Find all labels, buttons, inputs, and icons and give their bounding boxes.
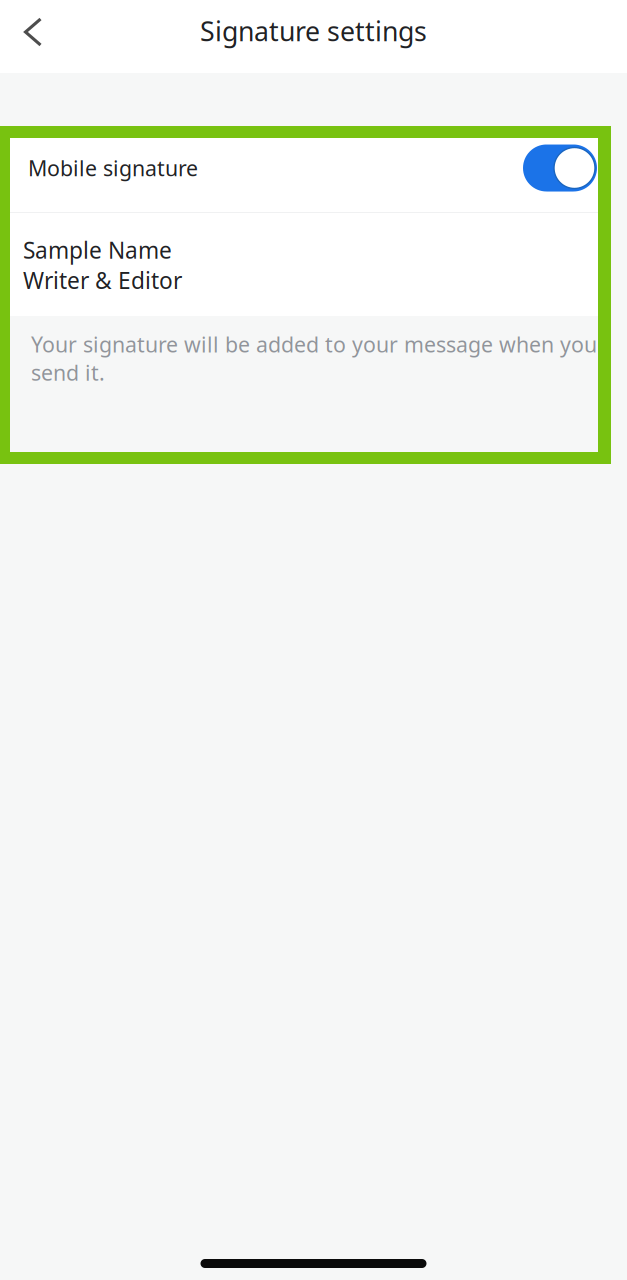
staticText: Signature settings [200,13,427,49]
staticText: Mobile signature [28,154,198,182]
button[interactable]: Sample Name [10,213,598,316]
button[interactable]: Mobile signature [10,138,598,212]
staticText: Your signature will be added to your mes… [31,330,597,387]
button[interactable]: Back [0,0,66,73]
staticText: Sample Name [23,235,172,265]
staticText: Writer & Editor [23,265,182,295]
